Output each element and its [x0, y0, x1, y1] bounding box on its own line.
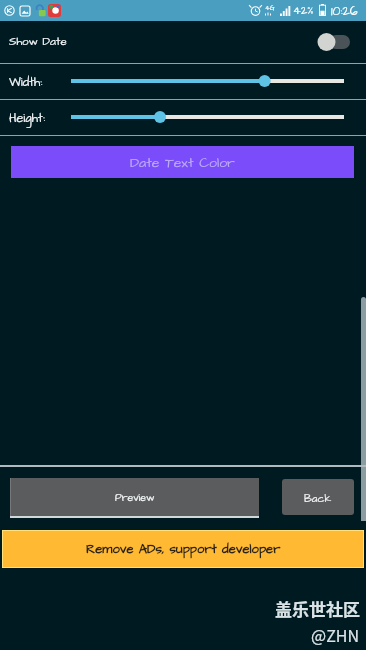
- staticText: 4G: [265, 3, 275, 13]
- staticText: 盖乐世社区: [275, 596, 360, 621]
- button[interactable]: [71, 71, 344, 91]
- staticText: Back: [304, 491, 332, 506]
- staticText: 10:26: [331, 3, 358, 20]
- button[interactable]: Date Text Color: [11, 146, 354, 178]
- staticText: Date Text Color: [130, 153, 235, 172]
- staticText: Width:: [9, 74, 43, 91]
- button[interactable]: Show Date: [0, 21, 366, 63]
- button[interactable]: Preview: [11, 478, 259, 516]
- staticText: 42%: [293, 3, 314, 19]
- button[interactable]: Back: [282, 479, 354, 515]
- staticText: Remove ADs, support developer: [86, 540, 281, 558]
- button[interactable]: Remove ADs, support developer: [3, 531, 363, 567]
- staticText: @ZHN: [311, 623, 360, 646]
- staticText: Show Date: [9, 34, 67, 50]
- button[interactable]: Show Date toggle: [315, 31, 350, 53]
- button[interactable]: [71, 107, 344, 127]
- staticText: Preview: [115, 491, 155, 506]
- staticText: Height:: [9, 110, 45, 127]
